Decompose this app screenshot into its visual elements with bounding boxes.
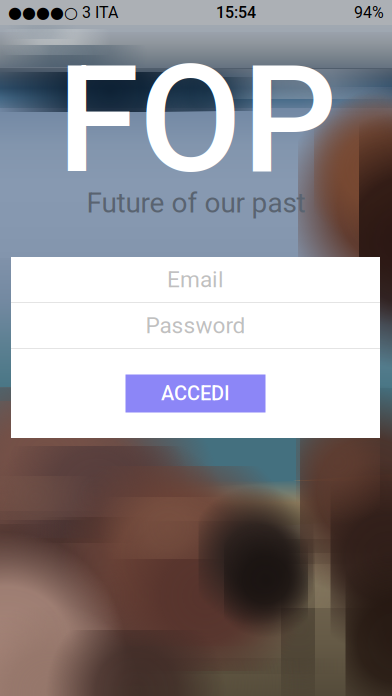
staticText: 15:54 bbox=[216, 3, 256, 22]
staticText: Password bbox=[145, 312, 245, 339]
staticText: ACCEDI bbox=[161, 382, 230, 405]
staticText: ●●●●○ 3 ITA bbox=[8, 3, 118, 22]
staticText: FOP bbox=[57, 32, 337, 207]
button[interactable]: Password bbox=[11, 303, 380, 348]
button[interactable]: ACCEDI bbox=[125, 374, 265, 412]
button[interactable]: Email bbox=[11, 257, 380, 302]
staticText: Future of our past bbox=[86, 187, 305, 219]
staticText: 94% bbox=[354, 3, 384, 22]
staticText: Email bbox=[167, 266, 224, 293]
